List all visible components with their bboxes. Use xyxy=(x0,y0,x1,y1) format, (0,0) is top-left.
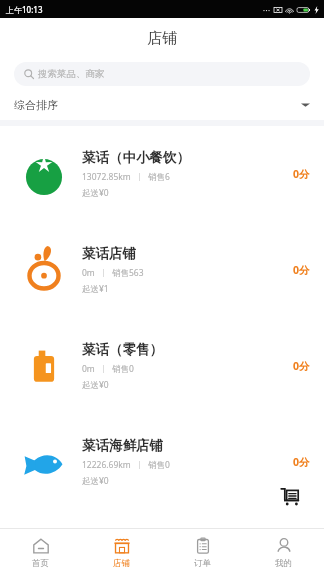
staticText: 上午10:13 xyxy=(6,4,43,15)
staticText: 菜话海鲜店铺 xyxy=(82,437,163,454)
button[interactable]: 菜话店铺 xyxy=(0,222,324,318)
staticText: 菜话（中小餐饮） xyxy=(82,149,190,166)
staticText: 店铺 xyxy=(113,558,130,569)
button[interactable]: 菜话（中小餐饮） xyxy=(0,126,324,222)
staticText: 起送¥1 xyxy=(82,283,109,295)
staticText: 0分 xyxy=(293,263,310,277)
staticText: 首页 xyxy=(32,558,49,569)
staticText: 销售6 xyxy=(148,171,170,183)
button[interactable]: 菜话（零售） xyxy=(0,318,324,414)
staticText: 销售563 xyxy=(112,267,144,279)
staticText: 0m xyxy=(82,267,95,279)
staticText: 销售0 xyxy=(112,363,134,375)
staticText: 店铺 xyxy=(147,29,177,48)
staticText: 搜索菜品、商家 xyxy=(38,68,105,80)
staticText: 起送¥0 xyxy=(82,379,109,391)
staticText: 综合排序 xyxy=(14,98,58,112)
staticText: 0分 xyxy=(293,167,310,181)
button[interactable]: 菜话海鲜店铺 xyxy=(0,414,324,510)
button[interactable]: 订单 xyxy=(162,529,243,576)
staticText: 起送¥0 xyxy=(82,187,109,199)
button[interactable]: 综合排序 xyxy=(0,90,324,120)
button[interactable]: Shopping cart xyxy=(268,474,312,518)
staticText: 菜话（零售） xyxy=(82,341,163,358)
button[interactable]: 店铺 xyxy=(81,529,162,576)
staticText: 销售0 xyxy=(148,459,170,471)
staticText: 菜话店铺 xyxy=(82,245,136,262)
button[interactable]: 我的 xyxy=(243,529,324,576)
button[interactable]: 搜索菜品、商家 xyxy=(14,62,310,86)
staticText: 订单 xyxy=(194,558,211,569)
staticText: 0m xyxy=(82,363,95,375)
staticText: 12226.69km xyxy=(82,459,131,471)
staticText: 13072.85km xyxy=(82,171,131,183)
staticText: 0分 xyxy=(293,359,310,373)
staticText: 起送¥0 xyxy=(82,475,109,487)
button[interactable]: 首页 xyxy=(0,529,81,576)
staticText: 0分 xyxy=(293,455,310,469)
staticText: 我的 xyxy=(275,558,292,569)
